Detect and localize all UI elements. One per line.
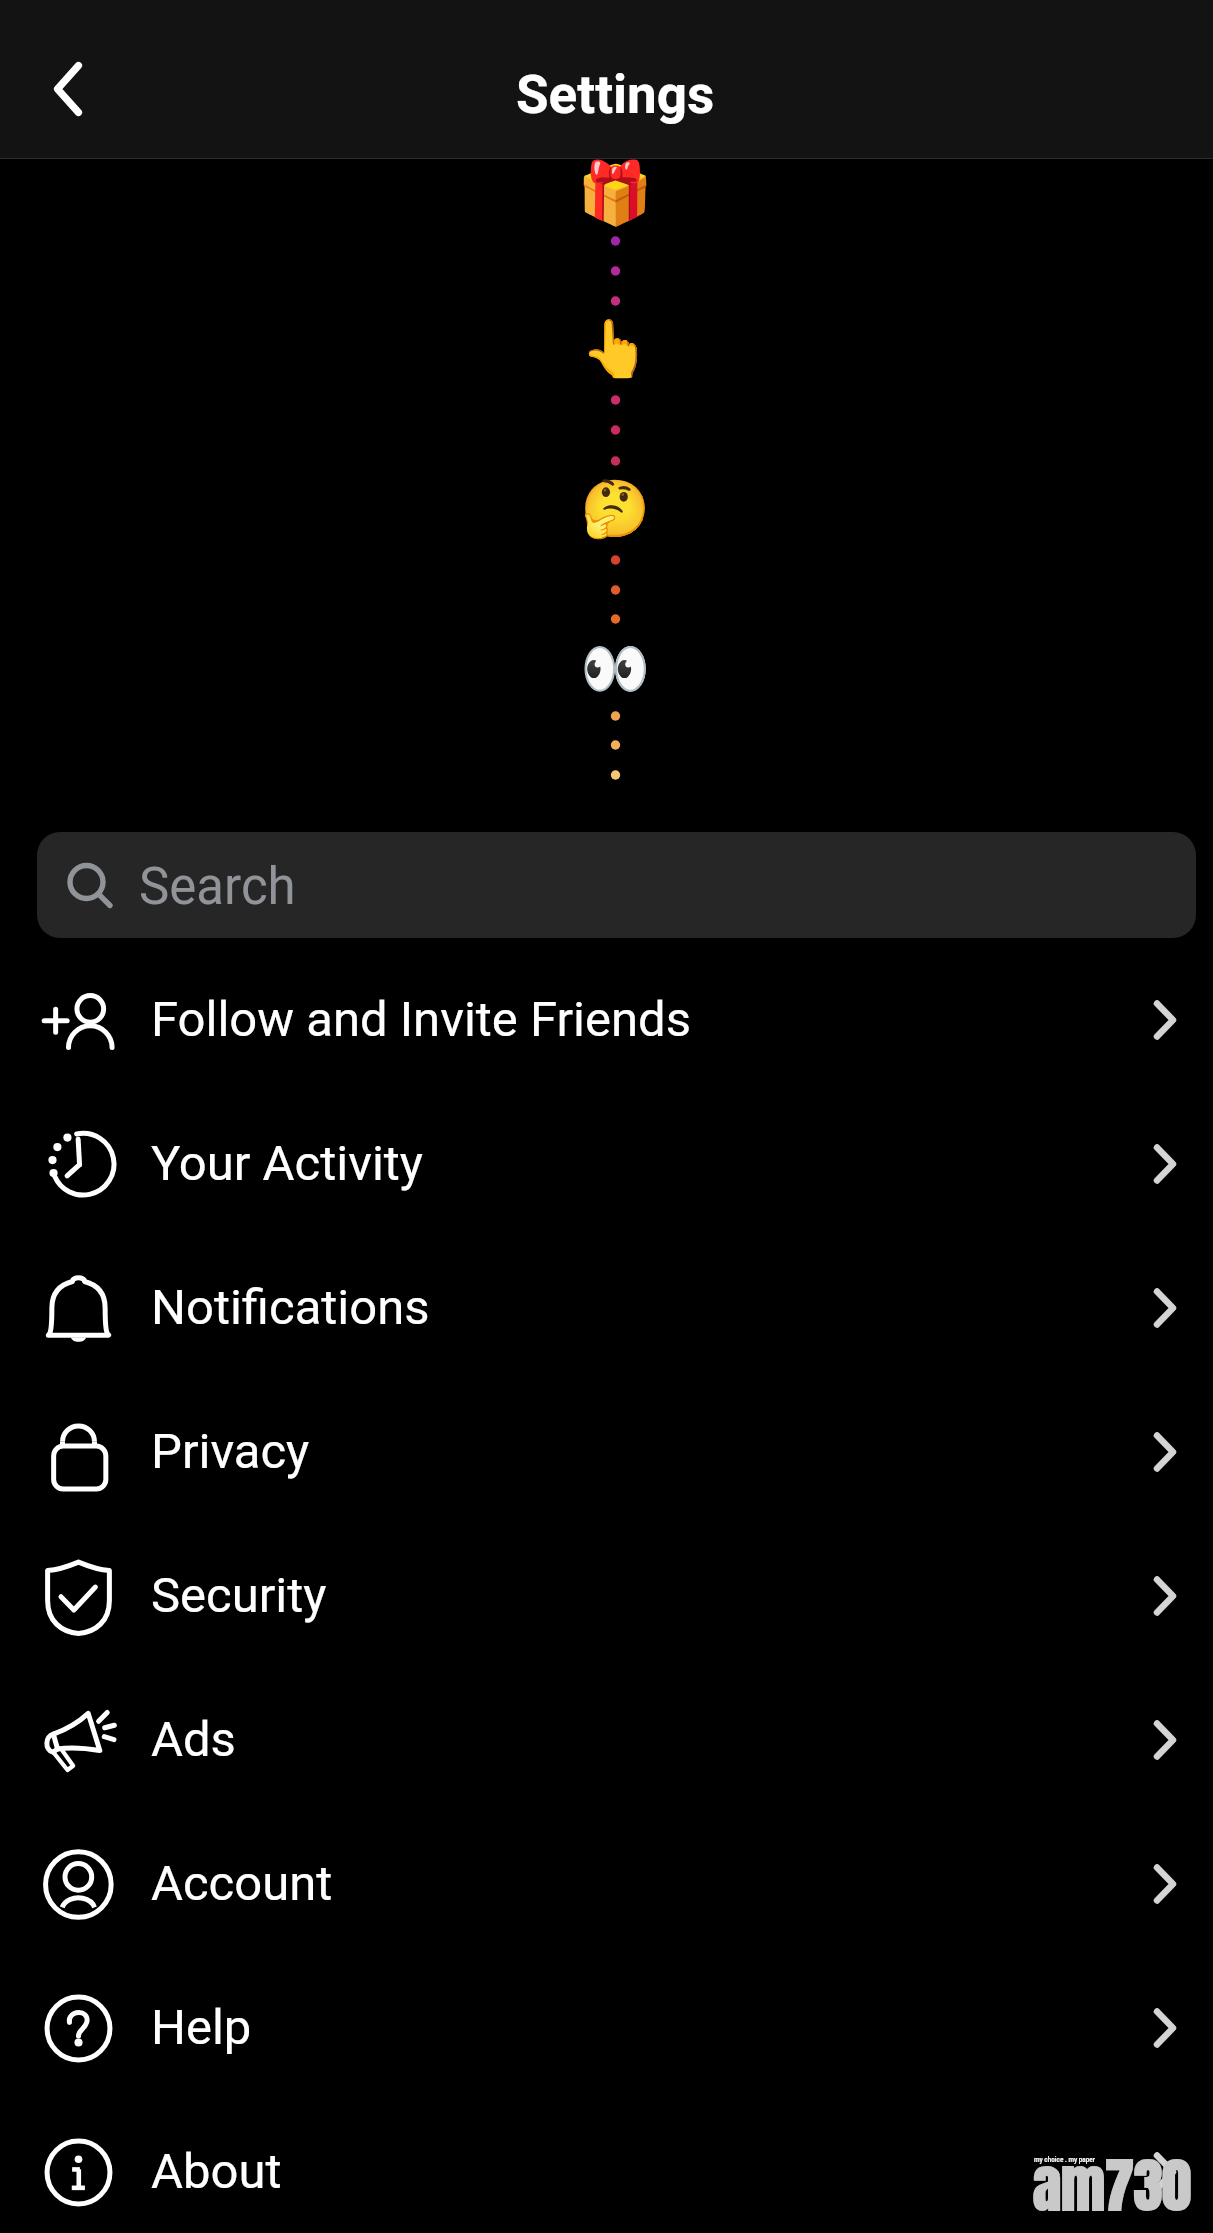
staticText: Settings (516, 64, 715, 126)
button[interactable]: Privacy (0, 1380, 1213, 1524)
staticText: Account (151, 1855, 333, 1912)
button[interactable]: About (0, 2100, 1213, 2233)
button[interactable]: Help (0, 1956, 1213, 2100)
button[interactable]: Notifications (0, 1236, 1213, 1380)
staticText: Ads (151, 1711, 236, 1768)
staticText: Your Activity (151, 1135, 424, 1192)
staticText: my choice . my paper (1034, 2156, 1096, 2164)
button[interactable]: Security (0, 1524, 1213, 1668)
button[interactable]: Ads (0, 1668, 1213, 1812)
staticText: Privacy (151, 1423, 310, 1480)
staticText: am730 (1033, 2142, 1191, 2229)
staticText: About (151, 2143, 282, 2200)
staticText: Follow and Invite Friends (151, 991, 691, 1048)
staticText: Search (139, 857, 296, 917)
button[interactable]: Back (12, 33, 124, 145)
staticText: Security (151, 1567, 327, 1624)
staticText: Help (151, 1999, 252, 2056)
staticText: 🎁 (577, 157, 653, 228)
button[interactable]: Follow and Invite Friends (0, 948, 1213, 1092)
button[interactable]: Your Activity (0, 1092, 1213, 1236)
staticText: 🤔 (580, 476, 650, 542)
staticText: 👆 (580, 316, 650, 382)
button[interactable]: Search (37, 832, 1196, 938)
staticText: 👀 (580, 636, 650, 702)
button[interactable]: Account (0, 1812, 1213, 1956)
staticText: Notifications (151, 1279, 430, 1336)
